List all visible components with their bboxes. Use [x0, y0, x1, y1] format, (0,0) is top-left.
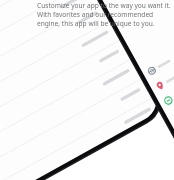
button[interactable]: Customize your app to the way you want i… [36, 0, 172, 28]
staticText: Customize your app to the way you want i… [37, 1, 172, 28]
button[interactable]: Next [130, 136, 174, 180]
